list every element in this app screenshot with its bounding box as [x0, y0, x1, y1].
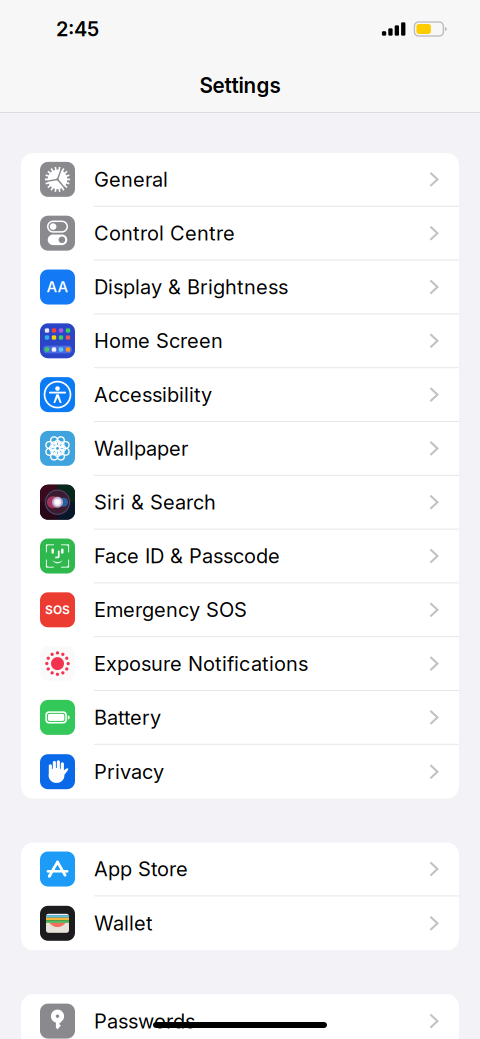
button[interactable]: Wallpaper [21, 422, 459, 476]
staticText: Home Screen [94, 329, 223, 353]
button[interactable]: Privacy [21, 745, 459, 799]
staticText: App Store [94, 857, 188, 881]
staticText: Accessibility [94, 382, 212, 407]
staticText: Siri & Search [94, 490, 216, 514]
staticText: Wallpaper [94, 436, 188, 460]
staticText: Control Centre [94, 221, 235, 245]
button[interactable]: General [21, 153, 459, 207]
staticText: General [94, 167, 168, 191]
button[interactable]: Wallet [21, 896, 459, 950]
button[interactable]: Accessibility [21, 368, 459, 422]
staticText: Battery [94, 705, 161, 729]
button[interactable]: App Store [21, 843, 459, 896]
staticText: 2:45 [56, 17, 99, 41]
staticText: SOS [45, 602, 70, 617]
button[interactable]: Home Screen [21, 314, 459, 368]
staticText: Settings [199, 73, 280, 98]
staticText: Wallet [94, 911, 153, 935]
staticText: Privacy [94, 760, 164, 784]
staticText: Display & Brightness [94, 275, 288, 299]
staticText: AA [46, 278, 68, 296]
button[interactable]: Passwords [21, 994, 459, 1039]
staticText: Passwords [94, 1009, 195, 1033]
button[interactable]: Siri & Search [21, 476, 459, 530]
button[interactable]: AA [21, 261, 459, 314]
button[interactable]: Face ID & Passcode [21, 530, 459, 583]
button[interactable]: Exposure Notifications [21, 637, 459, 691]
staticText: Face ID & Passcode [94, 544, 280, 568]
staticText: Exposure Notifications [94, 651, 308, 676]
button[interactable]: Battery [21, 691, 459, 745]
staticText: Emergency SOS [94, 598, 247, 622]
button[interactable]: SOS [21, 583, 459, 637]
button[interactable]: Control Centre [21, 207, 459, 261]
